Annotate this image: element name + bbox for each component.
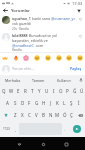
- button[interactable]: Recent apps: [61, 139, 71, 149]
- button[interactable]: Send: [73, 125, 81, 133]
- button[interactable]: M: [54, 109, 61, 121]
- button[interactable]: Y: [36, 85, 43, 97]
- button[interactable]: C: [26, 109, 33, 121]
- staticText: B: [42, 112, 45, 118]
- button[interactable]: G: [33, 97, 40, 109]
- staticText: I: [53, 88, 55, 94]
- button[interactable]: A: [3, 97, 11, 109]
- button[interactable]: B: [40, 109, 47, 121]
- button[interactable]: Emoji: [34, 55, 40, 61]
- button[interactable]: Comma: [13, 121, 19, 137]
- button[interactable]: oguzhan_1: [0, 16, 85, 31]
- staticText: Ç: [70, 112, 73, 118]
- button[interactable]: Voice input: [77, 75, 85, 85]
- button[interactable]: Emoji: [45, 55, 51, 61]
- staticText: .com: [34, 43, 44, 48]
- button[interactable]: ?123: [0, 121, 13, 137]
- staticText: .: [64, 127, 66, 132]
- button[interactable]: Shift: [0, 109, 11, 121]
- button[interactable]: V: [33, 109, 40, 121]
- staticText: Ğ: [73, 88, 77, 94]
- button[interactable]: N: [47, 109, 54, 121]
- staticText: N: [49, 112, 53, 118]
- button[interactable]: Sort comments: [74, 6, 83, 15]
- button[interactable]: O: [57, 85, 64, 97]
- staticText: R: [24, 88, 27, 94]
- button[interactable]: J: [47, 97, 54, 109]
- button[interactable]: Ü: [78, 85, 85, 97]
- button[interactable]: İ: [75, 97, 82, 109]
- button[interactable]: I: [50, 85, 57, 97]
- button[interactable]: Emoji: [56, 55, 62, 61]
- staticText: İ: [78, 100, 80, 106]
- staticText: K: [56, 100, 59, 106]
- button[interactable]: Ş: [68, 97, 75, 109]
- button[interactable]: K: [54, 97, 61, 109]
- staticText: V: [35, 112, 38, 118]
- staticText: C: [28, 112, 31, 118]
- staticText: L: [63, 100, 66, 106]
- staticText: F: [28, 100, 31, 106]
- button[interactable]: L: [61, 97, 68, 109]
- staticText: D: [21, 100, 25, 106]
- button[interactable]: X: [19, 109, 26, 121]
- staticText: Ş: [70, 100, 73, 106]
- button[interactable]: Paylaş: [69, 64, 83, 73]
- staticText: Yorumlar: [11, 8, 30, 14]
- staticText: J: [50, 100, 52, 106]
- button[interactable]: Ö: [61, 109, 68, 121]
- staticText: Ö: [63, 112, 67, 118]
- staticText: E: [17, 88, 20, 94]
- button[interactable]: Z: [11, 109, 19, 121]
- button[interactable]: Like: [77, 33, 83, 39]
- button[interactable]: Emoji: [66, 55, 72, 61]
- staticText: S: [14, 100, 17, 106]
- button[interactable]: U: [43, 85, 50, 97]
- button[interactable]: bilal8888: [0, 33, 85, 52]
- button[interactable]: Ç: [68, 109, 75, 121]
- button[interactable]: H: [40, 97, 47, 109]
- button[interactable]: R: [22, 85, 29, 97]
- button[interactable]: Q: [0, 85, 8, 97]
- button[interactable]: Back: [14, 139, 24, 149]
- staticText: ?123: [3, 127, 10, 131]
- button[interactable]: Back: [1, 6, 10, 15]
- staticText: Kullanın: [57, 78, 71, 83]
- button[interactable]: D: [19, 97, 26, 109]
- staticText: A: [6, 100, 9, 106]
- button[interactable]: Fire emoji: [13, 55, 19, 61]
- button[interactable]: P: [64, 85, 71, 97]
- button[interactable]: Ğ: [71, 85, 78, 97]
- button[interactable]: Tamam: [25, 75, 51, 85]
- button[interactable]: W: [8, 85, 15, 97]
- staticText: M: [55, 112, 60, 118]
- staticText: Yorum ekle...: [12, 66, 34, 71]
- staticText: H: [42, 100, 46, 106]
- button[interactable]: Crown emoji: [2, 55, 8, 61]
- button[interactable]: Blossom emoji: [23, 55, 29, 61]
- staticText: cok guzeldi: [12, 21, 31, 26]
- staticText: @onudhostC: [12, 43, 34, 48]
- staticText: W: [9, 88, 14, 94]
- button[interactable]: F: [26, 97, 33, 109]
- button[interactable]: Like: [77, 16, 83, 22]
- staticText: X: [21, 112, 24, 118]
- staticText: Paylaş: [70, 66, 82, 71]
- button[interactable]: Merhaba: [0, 75, 25, 85]
- staticText: G: [35, 100, 39, 106]
- button[interactable]: Home: [38, 139, 48, 149]
- button[interactable]: S: [11, 97, 19, 109]
- button[interactable]: Emoji: [77, 55, 83, 61]
- staticText: Tamam: [32, 78, 45, 83]
- button[interactable]: Kullanın: [51, 75, 77, 85]
- button[interactable]: Backspace: [75, 109, 85, 121]
- staticText: Q: [2, 88, 6, 94]
- staticText: 20s: [12, 27, 17, 31]
- button[interactable]: Yorum ekle...: [12, 62, 69, 75]
- button[interactable]: E: [15, 85, 22, 97]
- button[interactable]: T: [29, 85, 36, 97]
- staticText: Y: [38, 88, 41, 94]
- staticText: T: [31, 88, 34, 94]
